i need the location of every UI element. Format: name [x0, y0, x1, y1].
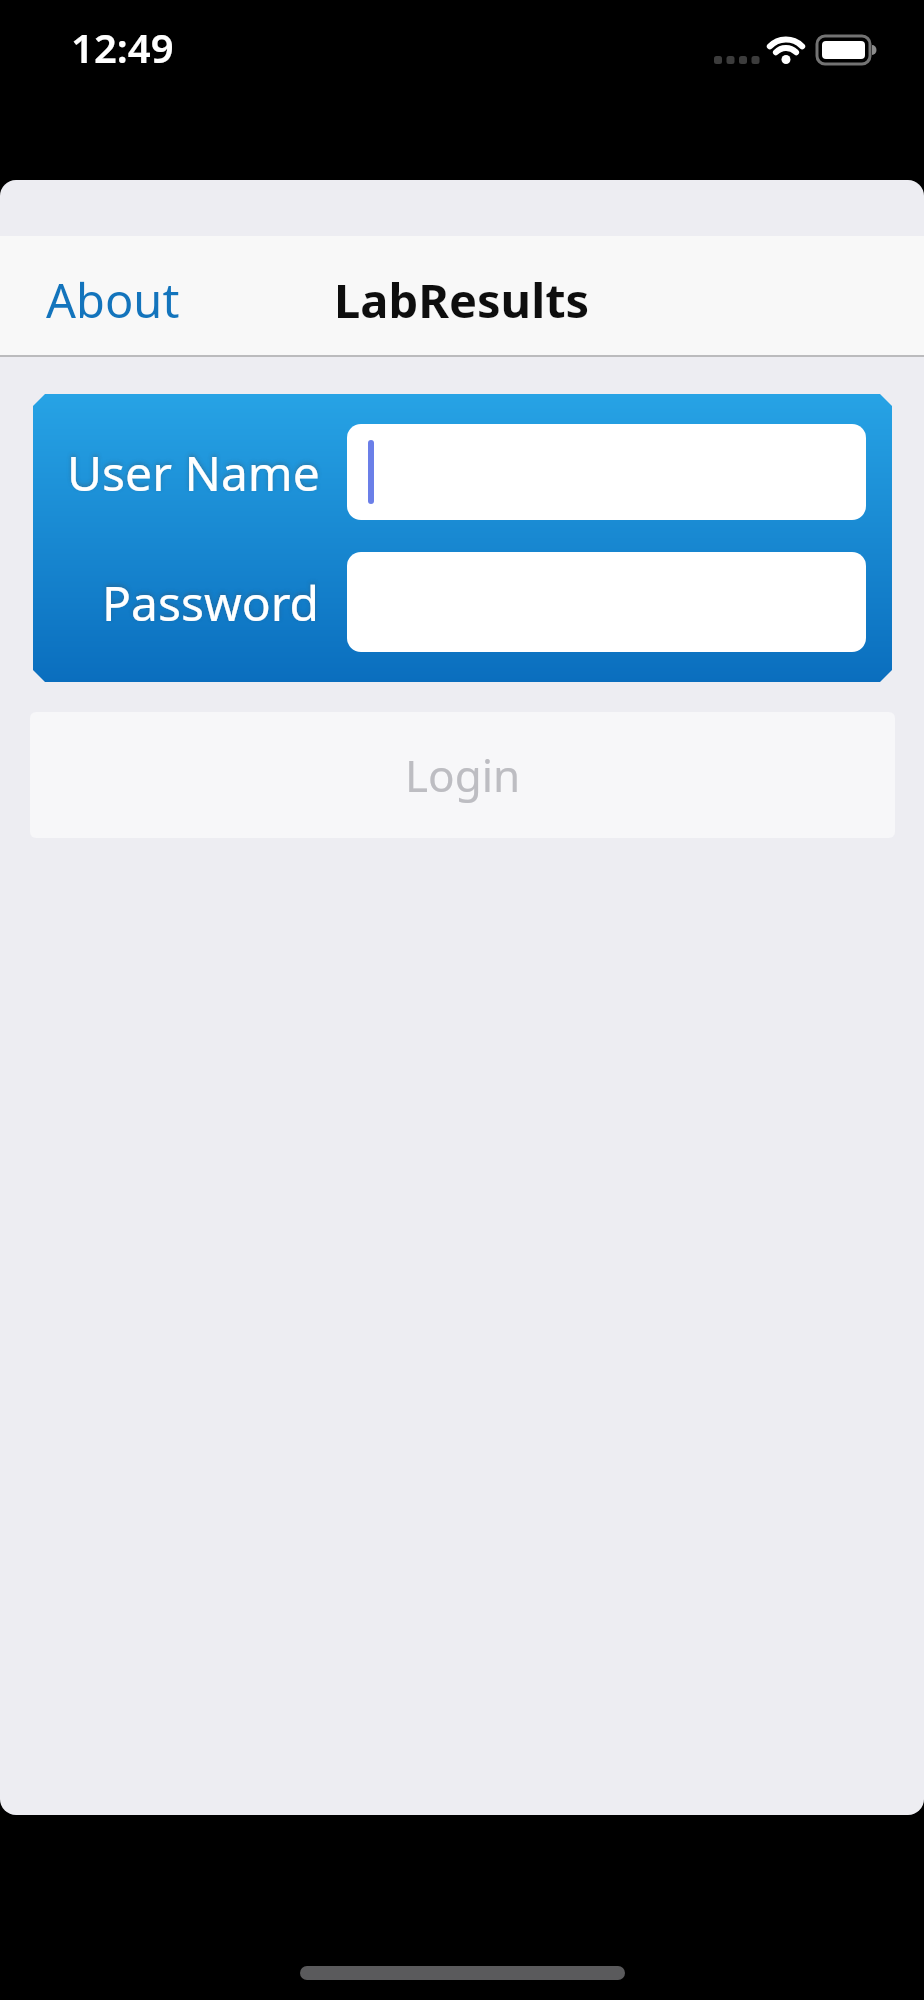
button[interactable] — [347, 424, 866, 520]
button[interactable]: Login — [30, 712, 895, 838]
staticText: Login — [405, 745, 521, 805]
staticText: 12:49 — [71, 20, 174, 74]
staticText: User Name — [67, 440, 320, 505]
button[interactable]: About — [0, 268, 180, 332]
staticText: LabResults — [334, 268, 590, 332]
button[interactable] — [347, 552, 866, 652]
staticText: Password — [102, 570, 320, 635]
